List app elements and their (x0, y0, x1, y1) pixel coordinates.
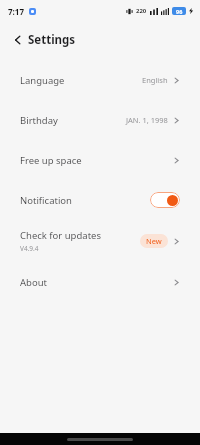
staticText: Settings (28, 32, 76, 48)
staticText: Notification (20, 194, 72, 207)
staticText: Free up space (20, 154, 82, 167)
button[interactable]: Back (6, 28, 30, 52)
button[interactable]: Free up space (0, 140, 200, 180)
button[interactable]: Notification toggle, on (150, 192, 180, 208)
button[interactable]: Language (0, 60, 200, 100)
button[interactable]: Birthday (0, 100, 200, 140)
button[interactable]: Check for updates (0, 220, 200, 262)
staticText: Check for updates (20, 229, 101, 242)
staticText: Language (20, 74, 65, 87)
staticText: V4.9.4 (20, 244, 39, 253)
staticText: JAN. 1, 1998 (126, 115, 168, 125)
staticText: About (20, 276, 47, 289)
button[interactable]: About (0, 262, 200, 302)
staticText: New (146, 236, 162, 246)
staticText: 7:17 (8, 6, 24, 17)
staticText: 96 (176, 8, 183, 15)
staticText: Birthday (20, 114, 58, 127)
staticText: 220 (136, 7, 147, 15)
button[interactable]: Notification (0, 180, 200, 220)
staticText: English (142, 75, 168, 85)
